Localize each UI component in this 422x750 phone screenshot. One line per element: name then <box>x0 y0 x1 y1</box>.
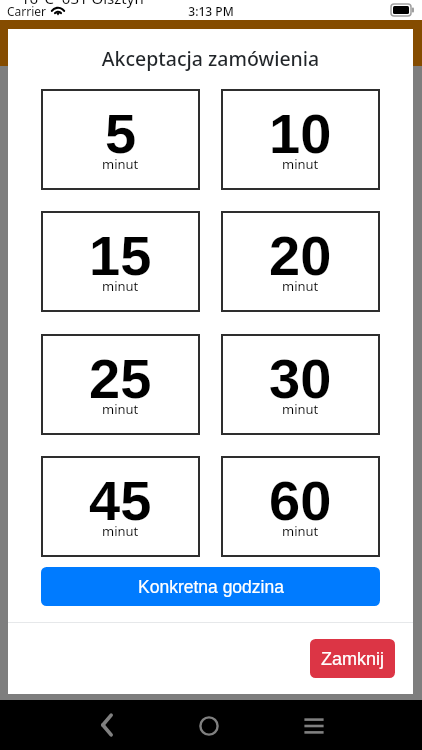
button[interactable]: 20 <box>221 211 380 312</box>
button[interactable]: 10 <box>221 89 380 190</box>
button[interactable]: 60 <box>221 456 380 557</box>
staticText: 15 <box>89 224 152 287</box>
staticText: 3:13 PM <box>0 3 422 19</box>
staticText: minut <box>102 400 139 418</box>
button[interactable]: 25 <box>41 334 200 435</box>
button[interactable]: Home <box>185 702 233 750</box>
staticText: minut <box>282 522 319 540</box>
staticText: minut <box>102 522 139 540</box>
button[interactable]: 5 <box>41 89 200 190</box>
button[interactable]: 30 <box>221 334 380 435</box>
button[interactable]: Back <box>83 701 131 749</box>
button[interactable]: Menu <box>290 702 338 750</box>
staticText: minut <box>102 277 139 295</box>
staticText: Konkretna godzina <box>138 577 284 597</box>
staticText: 30 <box>269 347 332 410</box>
staticText: 20 <box>269 224 332 287</box>
staticText: Carrier <box>7 3 47 19</box>
staticText: 5 <box>105 102 137 165</box>
staticText: minut <box>282 277 319 295</box>
button[interactable]: Zamknij <box>310 639 395 678</box>
staticText: minut <box>282 155 319 173</box>
staticText: minut <box>282 400 319 418</box>
button[interactable]: 15 <box>41 211 200 312</box>
staticText: 10 <box>269 102 332 165</box>
button[interactable]: 45 <box>41 456 200 557</box>
staticText: 45 <box>89 469 152 532</box>
staticText: 16°C 031 Olsztyn <box>21 0 144 8</box>
button[interactable]: Konkretna godzina <box>41 567 380 606</box>
staticText: Akceptacja zamówienia <box>8 45 413 72</box>
staticText: 60 <box>269 469 332 532</box>
staticText: 25 <box>89 347 152 410</box>
staticText: minut <box>102 155 139 173</box>
staticText: Zamknij <box>321 649 385 669</box>
